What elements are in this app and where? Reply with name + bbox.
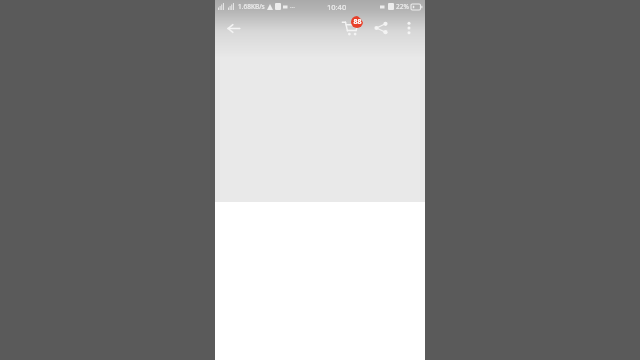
button[interactable]: Cart (336, 14, 364, 42)
staticText: 1.68KB/s (238, 2, 265, 11)
staticText: 22% (396, 2, 409, 11)
staticText: ··· (290, 3, 295, 11)
staticText: 10:40 (327, 2, 347, 12)
staticText: 88 (353, 17, 362, 27)
button[interactable]: Share (367, 14, 395, 42)
button[interactable]: More options (396, 15, 422, 41)
button[interactable]: Back (220, 15, 246, 41)
